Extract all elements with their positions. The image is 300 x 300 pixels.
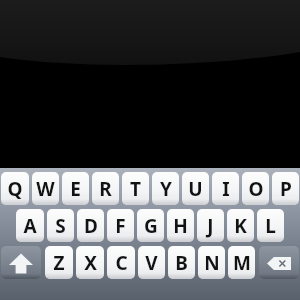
- button[interactable]: W: [32, 172, 59, 205]
- staticText: D: [84, 213, 98, 239]
- button[interactable]: E: [62, 172, 89, 205]
- button[interactable]: L: [257, 209, 284, 242]
- button[interactable]: I: [212, 172, 239, 205]
- staticText: L: [265, 213, 276, 239]
- button[interactable]: V: [138, 246, 165, 279]
- staticText: A: [23, 213, 37, 239]
- button[interactable]: K: [227, 209, 254, 242]
- staticText: B: [175, 250, 188, 276]
- button[interactable]: N: [198, 246, 225, 279]
- button[interactable]: D: [77, 209, 104, 242]
- staticText: S: [55, 213, 66, 239]
- button[interactable]: Backspace: [259, 246, 299, 279]
- button[interactable]: G: [137, 209, 164, 242]
- staticText: G: [144, 213, 158, 239]
- staticText: J: [207, 213, 214, 239]
- staticText: H: [173, 213, 188, 239]
- button[interactable]: A: [16, 209, 44, 242]
- staticText: T: [130, 176, 141, 202]
- button[interactable]: U: [182, 172, 209, 205]
- button[interactable]: O: [242, 172, 269, 205]
- button[interactable]: P: [272, 172, 299, 205]
- button[interactable]: J: [197, 209, 224, 242]
- staticText: Z: [53, 250, 65, 276]
- staticText: M: [233, 250, 251, 276]
- staticText: R: [99, 176, 112, 202]
- button[interactable]: Z: [45, 246, 73, 279]
- button[interactable]: X: [76, 246, 104, 279]
- staticText: P: [280, 176, 292, 202]
- staticText: U: [188, 176, 203, 202]
- staticText: X: [84, 250, 97, 276]
- button[interactable]: M: [228, 246, 255, 279]
- button[interactable]: Y: [152, 172, 179, 205]
- staticText: E: [70, 176, 81, 202]
- button[interactable]: Shift: [1, 246, 41, 279]
- button[interactable]: H: [167, 209, 194, 242]
- staticText: Q: [7, 176, 23, 202]
- button[interactable]: F: [107, 209, 134, 242]
- staticText: I: [222, 176, 230, 202]
- button[interactable]: S: [47, 209, 74, 242]
- staticText: W: [36, 176, 55, 202]
- staticText: Y: [160, 176, 172, 202]
- staticText: N: [204, 250, 220, 276]
- button[interactable]: C: [107, 246, 135, 279]
- button[interactable]: B: [168, 246, 195, 279]
- staticText: V: [145, 250, 158, 276]
- button[interactable]: Q: [1, 172, 29, 205]
- button[interactable]: T: [122, 172, 149, 205]
- staticText: K: [234, 213, 247, 239]
- staticText: C: [115, 250, 128, 276]
- staticText: F: [115, 213, 126, 239]
- button[interactable]: R: [92, 172, 119, 205]
- staticText: O: [248, 176, 264, 202]
